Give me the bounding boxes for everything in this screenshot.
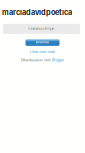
staticText: marciadavidpoetica xyxy=(2,8,72,17)
staticText: Beranda xyxy=(36,41,49,44)
staticText: Diberdayakan oleh xyxy=(21,58,51,62)
button[interactable]: Lihat versi web xyxy=(30,50,55,54)
button[interactable]: Blogger xyxy=(52,58,64,62)
staticText: Blogger xyxy=(52,58,64,62)
staticText: Lihat versi web xyxy=(30,50,55,54)
staticText: Tidak ada postingan. xyxy=(27,27,55,30)
button[interactable]: Beranda xyxy=(25,39,59,46)
